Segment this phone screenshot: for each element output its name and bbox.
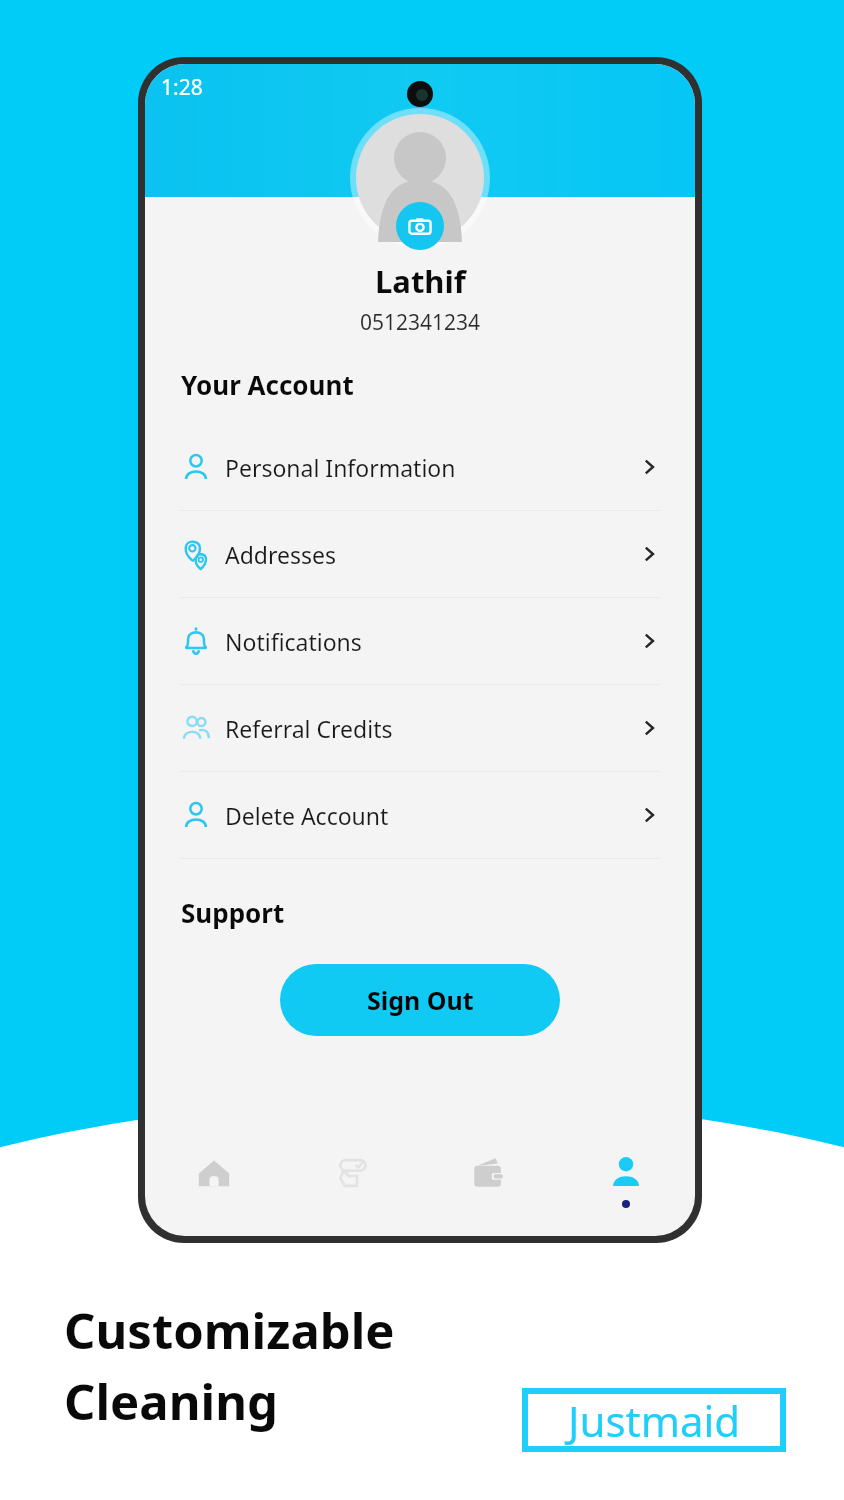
staticText: Notifications	[225, 626, 362, 657]
button[interactable]: Sign Out	[280, 964, 560, 1036]
staticText: Cleaning	[64, 1368, 278, 1435]
staticText: Customizable	[64, 1297, 395, 1364]
button[interactable]: Personal Information	[145, 424, 695, 510]
staticText: Addresses	[225, 539, 337, 570]
button[interactable]: Home	[145, 1126, 282, 1236]
button[interactable]: Referral Credits	[145, 685, 695, 771]
staticText: Support	[181, 895, 695, 930]
button[interactable]: Delete Account	[145, 772, 695, 858]
staticText: Delete Account	[225, 800, 389, 831]
button[interactable]: Notifications	[145, 598, 695, 684]
button[interactable]: Profile	[557, 1126, 695, 1236]
staticText: Referral Credits	[225, 713, 393, 744]
staticText: 1:28	[161, 73, 203, 102]
button[interactable]: Addresses	[145, 511, 695, 597]
staticText: Personal Information	[225, 452, 456, 483]
button[interactable]: Change profile photo	[396, 202, 444, 250]
button[interactable]: Wallet	[419, 1126, 557, 1236]
staticText: Lathif	[375, 260, 466, 302]
staticText: Justmaid	[568, 1392, 741, 1449]
staticText: 0512341234	[360, 308, 481, 337]
staticText: Sign Out	[367, 983, 474, 1017]
staticText: Your Account	[181, 367, 695, 402]
